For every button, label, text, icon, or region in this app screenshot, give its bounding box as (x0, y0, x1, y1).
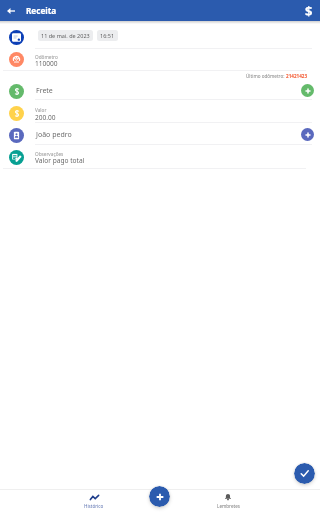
button[interactable]: 11 de mai. de 2023 (38, 30, 93, 41)
staticText: Frete (36, 86, 53, 96)
button[interactable]: Back (0, 0, 22, 21)
staticText: João pedro (36, 130, 72, 140)
staticText: Valor pago total (35, 156, 85, 165)
button[interactable]: Lembretes (216, 494, 240, 509)
staticText: Histórico (84, 503, 104, 509)
staticText: Receita (26, 5, 57, 16)
staticText: 16:51 (100, 32, 115, 39)
staticText: 11 de mai. de 2023 (41, 32, 90, 39)
button[interactable]: Add freight (301, 84, 314, 97)
button[interactable]: 16:51 (97, 30, 118, 41)
button[interactable]: Histórico (84, 495, 104, 509)
staticText: Observações (35, 151, 64, 157)
staticText: 21421423 (286, 73, 308, 79)
staticText: Último odômetro: (246, 73, 286, 79)
staticText: Valor (35, 107, 47, 113)
button[interactable]: Add (149, 486, 170, 507)
staticText: 200.00 (35, 113, 56, 122)
staticText: Lembretes (217, 503, 240, 509)
button[interactable]: Add person (301, 128, 314, 141)
staticText: Odômetro (35, 54, 58, 60)
button[interactable]: Confirm (294, 463, 315, 484)
staticText: 110000 (35, 59, 58, 68)
staticText: $ (305, 2, 313, 20)
button[interactable]: Currency (298, 0, 320, 21)
